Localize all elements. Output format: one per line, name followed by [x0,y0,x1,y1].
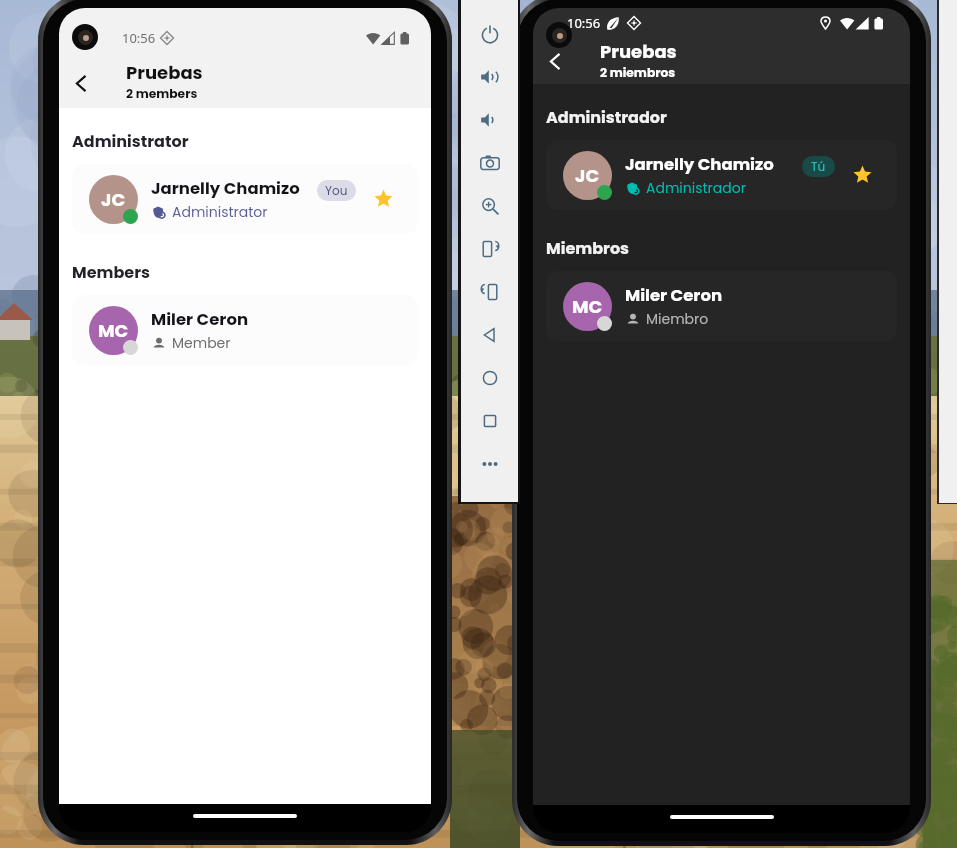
staticText: 2 miembros [600,64,676,81]
staticText: Miembros [546,237,630,259]
staticText: Miembro [646,309,709,329]
button[interactable]: Rotate left [468,227,511,270]
button[interactable]: More [468,442,511,485]
staticText: Miler Ceron [151,308,249,331]
staticText: MC [572,294,603,319]
button[interactable]: JC [546,140,897,210]
button[interactable]: Screenshot [468,141,511,184]
staticText: 10:56 [567,14,601,32]
button[interactable]: Zoom [468,184,511,227]
button[interactable]: JC [72,164,418,234]
staticText: Pruebas [126,60,203,85]
staticText: You [325,182,348,199]
staticText: 2 members [126,85,198,102]
staticText: Members [72,261,150,283]
staticText: Tú [811,158,826,175]
button[interactable]: MC [72,295,418,365]
staticText: Administrator [72,130,189,152]
staticText: JC [575,163,600,188]
button[interactable]: Favourite [372,187,394,209]
staticText: Jarnelly Chamizo [151,177,300,200]
button[interactable]: Favourite [851,163,873,185]
staticText: Member [172,333,231,353]
staticText: Administrator [172,202,268,222]
button[interactable]: Power [468,12,511,55]
button[interactable]: Volume up [468,55,511,98]
button[interactable]: Overview [468,399,511,442]
button[interactable]: Volume down [468,98,511,141]
button[interactable]: Tú [802,156,835,177]
button[interactable]: You [317,180,356,201]
staticText: MC [98,318,129,343]
staticText: Administrador [546,106,667,128]
staticText: Jarnelly Chamizo [625,153,774,176]
staticText: Administrador [646,178,746,198]
button[interactable]: Rotate right [468,270,511,313]
staticText: Pruebas [600,39,677,64]
button[interactable]: MC [546,271,897,341]
button[interactable]: Back [468,313,511,356]
staticText: 10:56 [122,29,156,47]
staticText: Miler Ceron [625,284,723,307]
button[interactable]: Back [538,45,571,78]
button[interactable]: Back [64,67,97,100]
button[interactable]: Home [468,356,511,399]
staticText: JC [101,187,126,212]
